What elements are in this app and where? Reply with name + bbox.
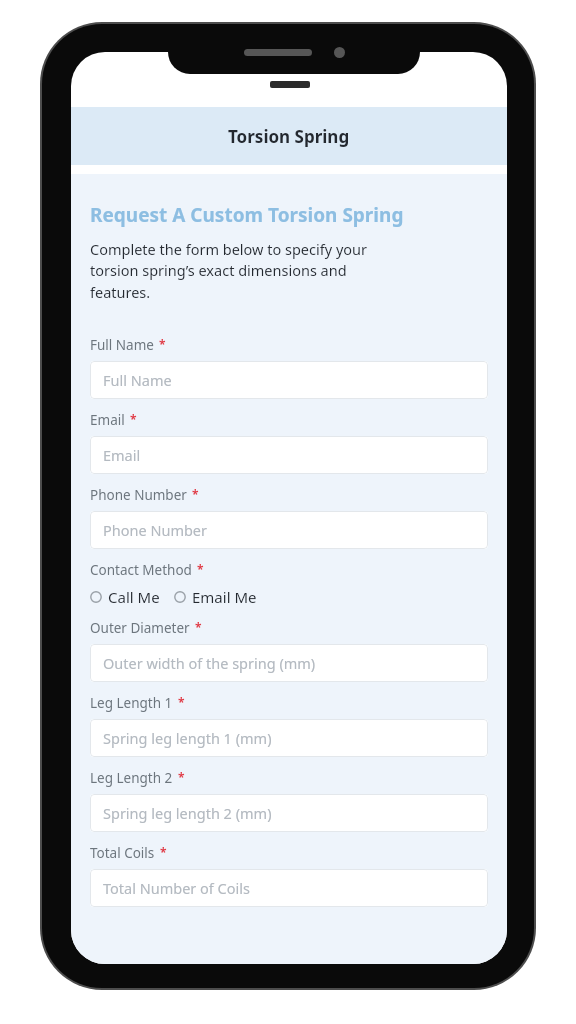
staticText: Call Me xyxy=(108,587,160,607)
button[interactable]: Full Name xyxy=(90,361,488,399)
staticText: * xyxy=(195,619,202,635)
staticText: Outer Diameter xyxy=(90,619,190,637)
staticText: * xyxy=(192,486,199,502)
staticText: Outer width of the spring (mm) xyxy=(103,653,316,673)
button[interactable]: Email xyxy=(90,436,488,474)
button[interactable]: Email Me xyxy=(174,587,257,607)
staticText: Spring leg length 1 (mm) xyxy=(103,728,272,748)
staticText: Request A Custom Torsion Spring xyxy=(90,202,404,228)
staticText: Complete the form below to specify your … xyxy=(90,239,368,303)
staticText: Phone Number xyxy=(90,486,187,504)
staticText: Contact Method xyxy=(90,561,192,579)
staticText: Email xyxy=(103,445,141,465)
button[interactable]: Spring leg length 1 (mm) xyxy=(90,719,488,757)
button[interactable]: Phone Number xyxy=(90,511,488,549)
staticText: Full Name xyxy=(103,370,172,390)
staticText: Phone Number xyxy=(103,520,208,540)
staticText: Email Me xyxy=(192,587,257,607)
staticText: Leg Length 2 xyxy=(90,769,173,787)
staticText: * xyxy=(160,844,167,860)
other: Earpiece speaker and front camera xyxy=(244,47,345,58)
staticText: Full Name xyxy=(90,336,154,354)
staticText: Torsion Spring xyxy=(228,125,350,148)
staticText: * xyxy=(159,336,166,352)
button[interactable]: Outer width of the spring (mm) xyxy=(90,644,488,682)
button[interactable]: Call Me xyxy=(90,587,160,607)
staticText: * xyxy=(130,411,137,427)
staticText: * xyxy=(178,769,185,785)
staticText: Leg Length 1 xyxy=(90,694,173,712)
button[interactable]: Total Number of Coils xyxy=(90,869,488,907)
button[interactable]: Spring leg length 2 (mm) xyxy=(90,794,488,832)
staticText: Spring leg length 2 (mm) xyxy=(103,803,272,823)
staticText: * xyxy=(197,561,204,577)
staticText: Email xyxy=(90,411,125,429)
staticText: * xyxy=(178,694,185,710)
staticText: Total Coils xyxy=(90,844,155,862)
staticText: Total Number of Coils xyxy=(103,878,250,898)
